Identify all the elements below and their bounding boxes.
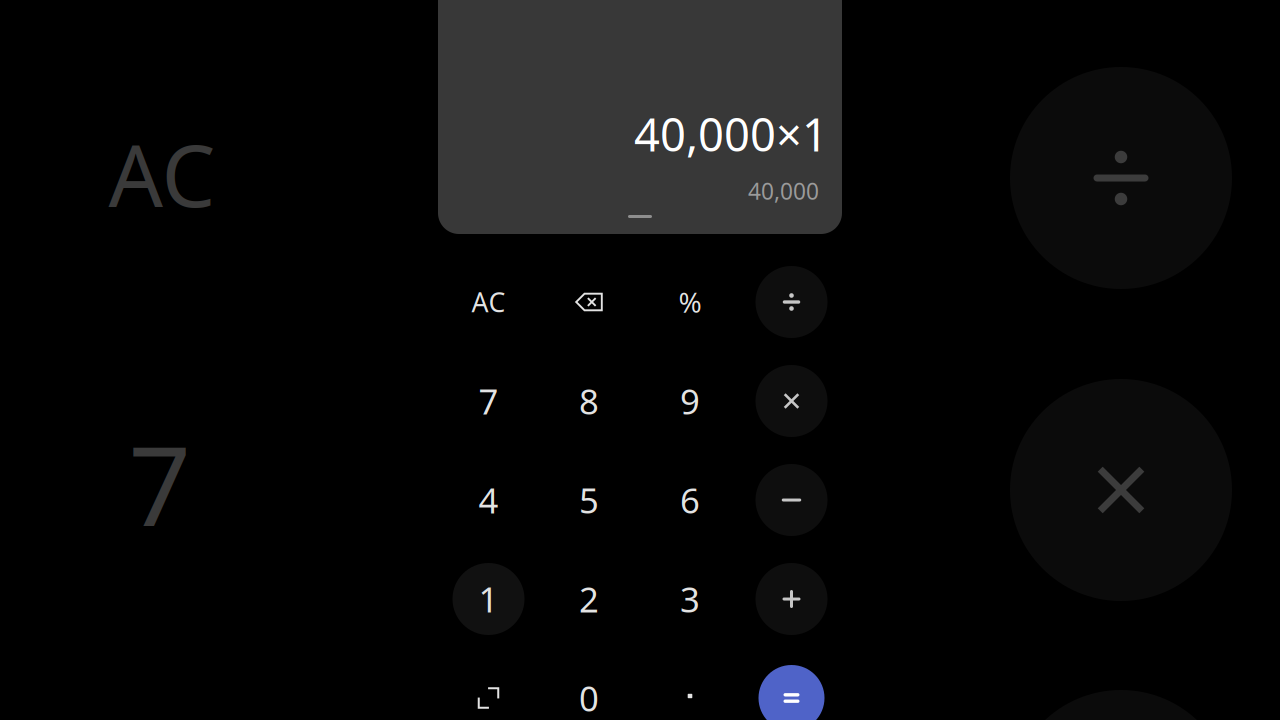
- button[interactable]: Divide: [755, 266, 827, 338]
- button[interactable]: Equals: [758, 665, 824, 720]
- button[interactable]: Three: [653, 562, 727, 636]
- button[interactable]: Percent: [653, 265, 727, 339]
- button[interactable]: Subtract: [755, 464, 827, 536]
- staticText: 9: [680, 378, 700, 424]
- button[interactable]: Expand: [451, 661, 525, 720]
- button[interactable]: Two: [552, 562, 626, 636]
- button[interactable]: One: [452, 563, 524, 635]
- staticText: 4: [478, 477, 498, 523]
- button[interactable]: Zero: [552, 661, 626, 720]
- button[interactable]: Six: [653, 463, 727, 537]
- staticText: 8: [579, 378, 599, 424]
- button[interactable]: All clear: [451, 265, 525, 339]
- staticText: 2: [579, 576, 599, 622]
- staticText: AC: [471, 284, 505, 320]
- button[interactable]: Five: [552, 463, 626, 537]
- staticText: 5: [579, 477, 599, 523]
- staticText: 3: [680, 576, 700, 622]
- staticText: %: [678, 283, 701, 321]
- staticText: 7: [128, 411, 191, 557]
- button[interactable]: Decimal point: [653, 661, 727, 720]
- button[interactable]: Nine: [653, 364, 727, 438]
- button[interactable]: Four: [451, 463, 525, 537]
- staticText: 40,000: [748, 176, 819, 206]
- button[interactable]: Add: [755, 563, 827, 635]
- staticText: 6: [680, 477, 700, 523]
- staticText: 0: [579, 675, 599, 720]
- button[interactable]: Eight: [552, 364, 626, 438]
- staticText: 40,000×1: [634, 104, 828, 164]
- staticText: 7: [478, 378, 498, 424]
- staticText: AC: [108, 117, 215, 231]
- button[interactable]: Multiply: [755, 365, 827, 437]
- button[interactable]: Seven: [451, 364, 525, 438]
- staticText: 1: [478, 576, 498, 622]
- button[interactable]: Delete: [552, 265, 626, 339]
